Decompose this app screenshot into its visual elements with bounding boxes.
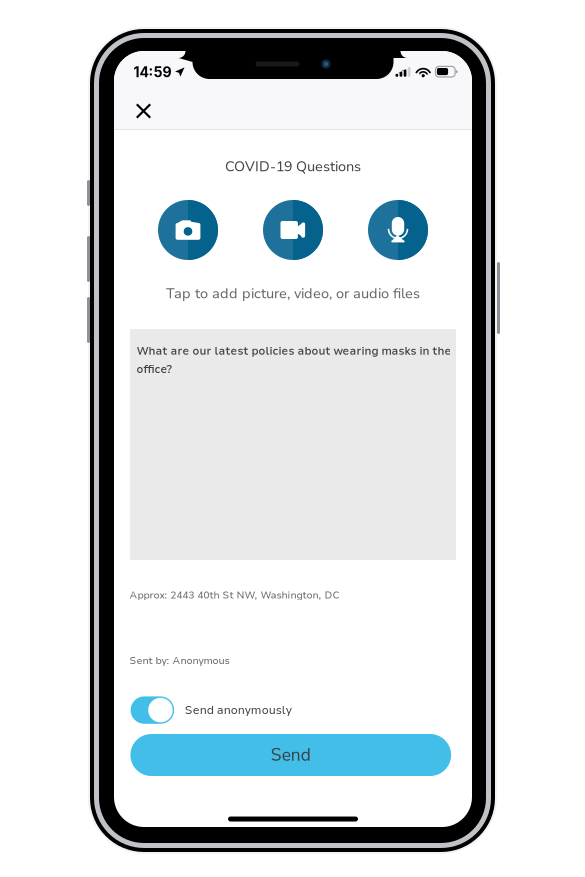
staticText: Tap to add picture, video, or audio file… <box>166 284 420 303</box>
staticText: Approx: 2443 40th St NW, Washington, DC <box>129 588 339 602</box>
staticText: Send <box>271 743 311 767</box>
button[interactable]: Add audio <box>368 200 428 260</box>
staticText: COVID-19 Questions <box>225 157 361 176</box>
staticText: What are our latest policies about weari… <box>136 343 451 377</box>
button[interactable]: Send <box>130 734 451 776</box>
button[interactable]: Add video <box>263 200 323 260</box>
button[interactable]: Add picture <box>158 200 218 260</box>
button[interactable]: Send anonymously <box>131 696 292 724</box>
button[interactable]: Close <box>127 95 159 127</box>
staticText: Sent by: Anonymous <box>129 654 229 667</box>
staticText: Send anonymously <box>185 702 292 718</box>
staticText: 14:59 <box>134 64 172 80</box>
